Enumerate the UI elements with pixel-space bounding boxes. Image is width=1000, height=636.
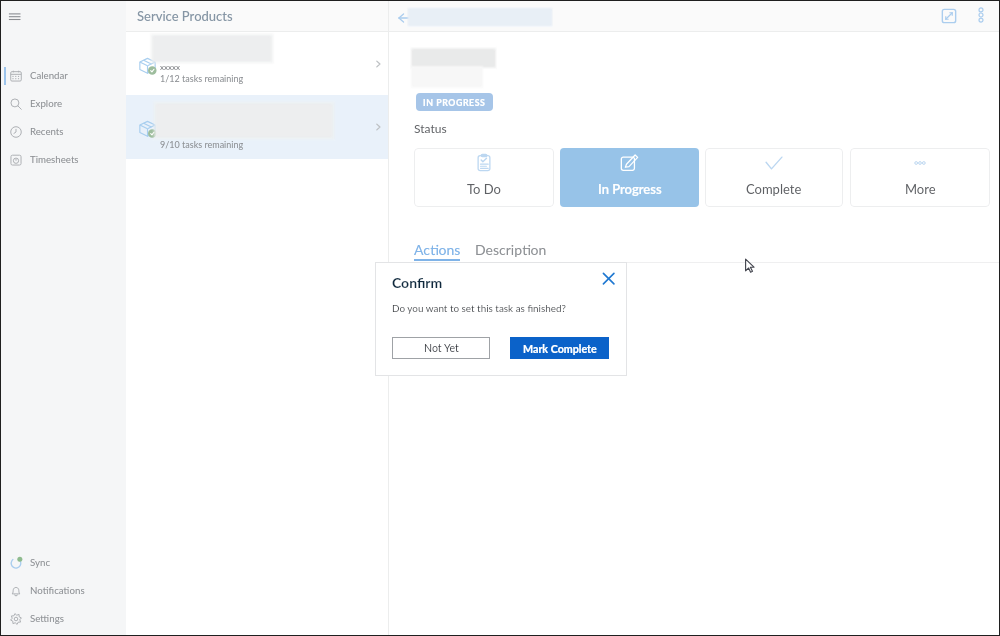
button[interactable]: Menu (6, 8, 28, 25)
button[interactable]: Expand (940, 7, 958, 25)
staticText: 9/10 tasks remaining (160, 139, 244, 150)
staticText: More (905, 181, 936, 197)
staticText: Service Products (137, 8, 233, 24)
staticText: Timesheets (30, 153, 79, 165)
button[interactable]: Complete (705, 148, 843, 207)
staticText: Complete (746, 181, 802, 197)
button[interactable]: More (850, 148, 990, 207)
button[interactable]: Actions (409, 237, 456, 263)
staticText: Description (475, 241, 547, 258)
staticText: xxxxx (160, 62, 180, 72)
button[interactable]: Not Yet (392, 337, 490, 359)
staticText: Notifications (30, 584, 85, 596)
button[interactable]: Back (396, 9, 414, 27)
staticText: Status (414, 121, 447, 135)
staticText: Confirm (392, 274, 443, 291)
button[interactable]: Explore (1, 91, 126, 117)
button[interactable]: Mark Complete (510, 337, 609, 359)
button[interactable]: 9/10 tasks remaining (126, 95, 389, 159)
button[interactable]: Timesheets (1, 147, 126, 173)
staticText: In Progress (598, 181, 662, 197)
button[interactable]: Close (600, 270, 617, 287)
button[interactable]: Description (470, 237, 542, 263)
staticText: Calendar (30, 69, 68, 81)
button[interactable]: IN PROGRESS (416, 93, 493, 111)
staticText: IN PROGRESS (423, 97, 486, 108)
staticText: Settings (30, 612, 64, 624)
staticText: Sync (30, 556, 51, 568)
staticText: To Do (467, 181, 501, 197)
button[interactable]: xxxxx (126, 32, 389, 96)
button[interactable]: More options (973, 7, 989, 23)
button[interactable]: To Do (414, 148, 554, 207)
staticText: Mark Complete (523, 342, 597, 355)
staticText: Actions (414, 241, 461, 258)
button[interactable]: In Progress (560, 148, 699, 207)
staticText: Recents (30, 125, 64, 137)
button[interactable]: Recents (1, 119, 126, 145)
staticText: 1/12 tasks remaining (160, 73, 244, 84)
button[interactable]: Sync (1, 550, 126, 576)
button[interactable]: Settings (1, 606, 126, 632)
staticText: Not Yet (424, 342, 459, 355)
staticText: Do you want to set this task as finished… (392, 302, 566, 314)
button[interactable]: Notifications (1, 578, 126, 604)
staticText: Explore (30, 97, 63, 109)
button[interactable]: Calendar (1, 63, 126, 89)
